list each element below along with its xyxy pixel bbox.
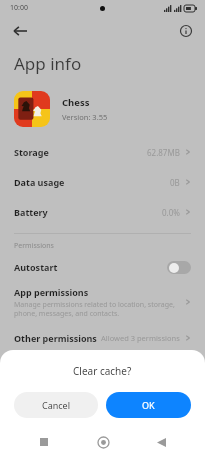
staticText: Chess xyxy=(62,96,90,109)
button[interactable]: Data usage xyxy=(0,167,205,197)
staticText: Storage xyxy=(14,146,49,158)
button[interactable]: Home xyxy=(88,428,118,456)
button[interactable]: Storage xyxy=(0,137,205,167)
button[interactable]: OK xyxy=(106,392,191,418)
staticText: 10:00 xyxy=(10,3,28,13)
staticText: Clear cache? xyxy=(73,364,132,378)
staticText: Data usage xyxy=(14,176,65,188)
staticText: OK xyxy=(142,399,155,411)
staticText: 0B xyxy=(170,177,180,188)
staticText: App info xyxy=(14,52,82,75)
staticText: Manage permissions related to location, … xyxy=(14,300,181,318)
staticText: Permissions xyxy=(14,241,54,251)
button[interactable]: Cancel xyxy=(14,392,98,418)
button[interactable]: Battery xyxy=(0,197,205,227)
button[interactable]: App permissions xyxy=(0,281,205,323)
button[interactable]: Back xyxy=(146,428,176,456)
staticText: 0.0% xyxy=(162,207,180,218)
staticText: 62.87MB xyxy=(147,147,180,158)
staticText: Battery xyxy=(14,206,48,218)
staticText: Version: 3.55 xyxy=(62,112,108,122)
button[interactable]: Info xyxy=(173,18,199,44)
staticText: Cancel xyxy=(42,399,71,411)
staticText: Allowed 3 permissions xyxy=(101,333,180,343)
button[interactable]: Recents xyxy=(29,428,59,456)
staticText: App permissions xyxy=(14,286,89,298)
staticText: Autostart xyxy=(14,261,58,273)
staticText: Other permissions xyxy=(14,332,97,344)
button[interactable]: Other permissions xyxy=(0,323,205,353)
button[interactable]: Back xyxy=(6,17,34,45)
button[interactable]: Autostart xyxy=(0,253,205,281)
